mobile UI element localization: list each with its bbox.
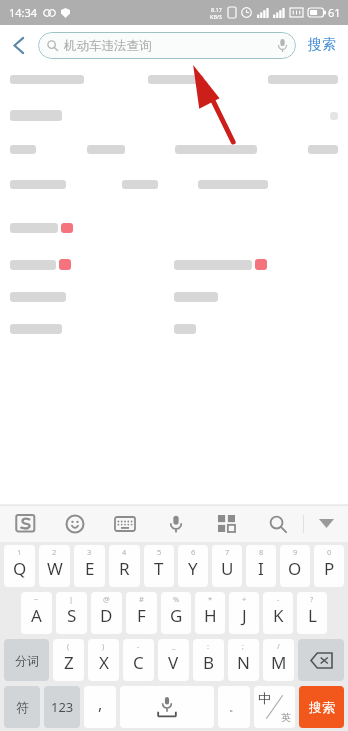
button[interactable]: Hide keyboard [304,505,348,542]
button[interactable]: - [123,639,154,681]
button[interactable]: 1 [4,545,35,587]
staticText: 分词 [15,653,39,668]
staticText: C [133,651,144,674]
button[interactable]: ) [88,639,119,681]
staticText: 5 [157,547,162,557]
staticText: K [273,604,284,627]
button[interactable]: 4 [109,545,140,587]
staticText: ) [102,641,105,651]
staticText: E [85,557,95,580]
staticText: Q [13,557,27,580]
button[interactable]: 搜索 [296,25,348,65]
staticText: O [288,557,302,580]
button[interactable]: 6 [178,545,208,587]
staticText: 机动车违法查询 [64,38,152,54]
button[interactable]: # [126,592,157,634]
staticText: 3 [87,547,92,557]
staticText: G [170,604,183,627]
button[interactable]: 。 [218,686,250,728]
button[interactable]: 机动车违法查询 [38,32,296,59]
button[interactable]: - [263,592,293,634]
button[interactable]: ? [297,592,327,634]
staticText: 符 [16,699,29,715]
staticText: _ [172,641,176,651]
staticText: | [69,594,74,604]
staticText: 。 [229,701,239,714]
other: Voice search [278,39,287,52]
button[interactable]: | [56,592,87,634]
staticText: I [258,557,264,580]
staticText: T [154,557,164,580]
button[interactable]: Space [120,686,214,728]
button[interactable]: 5 [144,545,174,587]
button[interactable]: 搜索 [299,686,344,728]
button[interactable]: Sogou input [0,505,50,542]
staticText: , [98,693,103,715]
button[interactable]: : [193,639,224,681]
button[interactable]: 9 [280,545,310,587]
button[interactable]: 3 [74,545,105,587]
staticText: R [119,557,130,580]
button[interactable]: 123 [44,686,80,728]
button[interactable]: * [195,592,225,634]
staticText: # [139,594,144,604]
button[interactable]: Keyboard layout [100,505,150,542]
button[interactable]: Back [0,25,38,65]
button[interactable]: Search [252,505,303,542]
button[interactable]: , [84,686,116,728]
staticText: F [137,604,146,627]
staticText: Z [64,651,74,674]
button[interactable]: Voice input [150,505,201,542]
staticText: 0 [327,547,332,557]
staticText: 14:34 [9,5,38,20]
button[interactable]: / [263,639,294,681]
staticText: : [207,641,210,651]
staticText: 9 [293,547,298,557]
staticText: U [221,557,234,580]
button[interactable]: @ [91,592,122,634]
staticText: 123 [51,698,74,716]
button[interactable]: ( [53,639,84,681]
button[interactable]: 7 [212,545,242,587]
staticText: 8.17 [211,6,222,13]
staticText: + [242,594,247,604]
button[interactable]: 分词 [4,639,49,681]
staticText: S [67,604,77,627]
staticText: Y [188,557,198,580]
staticText: ; [242,641,245,651]
staticText: 英 [281,711,291,724]
button[interactable]: ; [228,639,259,681]
staticText: A [31,604,42,627]
staticText: % [173,594,180,604]
staticText: V [168,651,179,674]
button[interactable]: ~ [21,592,52,634]
staticText: - [277,594,280,604]
button[interactable]: 2 [39,545,70,587]
staticText: / [277,641,280,651]
button[interactable]: % [161,592,191,634]
staticText: B [203,651,215,674]
button[interactable]: + [229,592,259,634]
button[interactable]: 符 [4,686,40,728]
staticText: ( [67,641,70,651]
button[interactable]: Switch Chinese English [254,686,295,728]
button[interactable]: 0 [314,545,344,587]
staticText: 7 [225,547,230,557]
button[interactable]: Backspace [298,639,344,681]
button[interactable]: Toolbox [201,505,252,542]
staticText: J [242,604,247,627]
staticText: ? [310,594,314,604]
staticText: 搜索 [309,699,335,715]
staticText: 6 [191,547,196,557]
staticText: 61 [328,5,341,20]
staticText: 中 [258,690,271,706]
staticText: - [137,641,140,651]
staticText: 8 [259,547,264,557]
button[interactable]: _ [158,639,189,681]
button[interactable]: 8 [246,545,276,587]
staticText: L [308,604,317,627]
staticText: * [208,594,213,604]
staticText: KB/S [210,13,223,20]
button[interactable]: Emoji [50,505,100,542]
staticText: 4 [122,547,127,557]
